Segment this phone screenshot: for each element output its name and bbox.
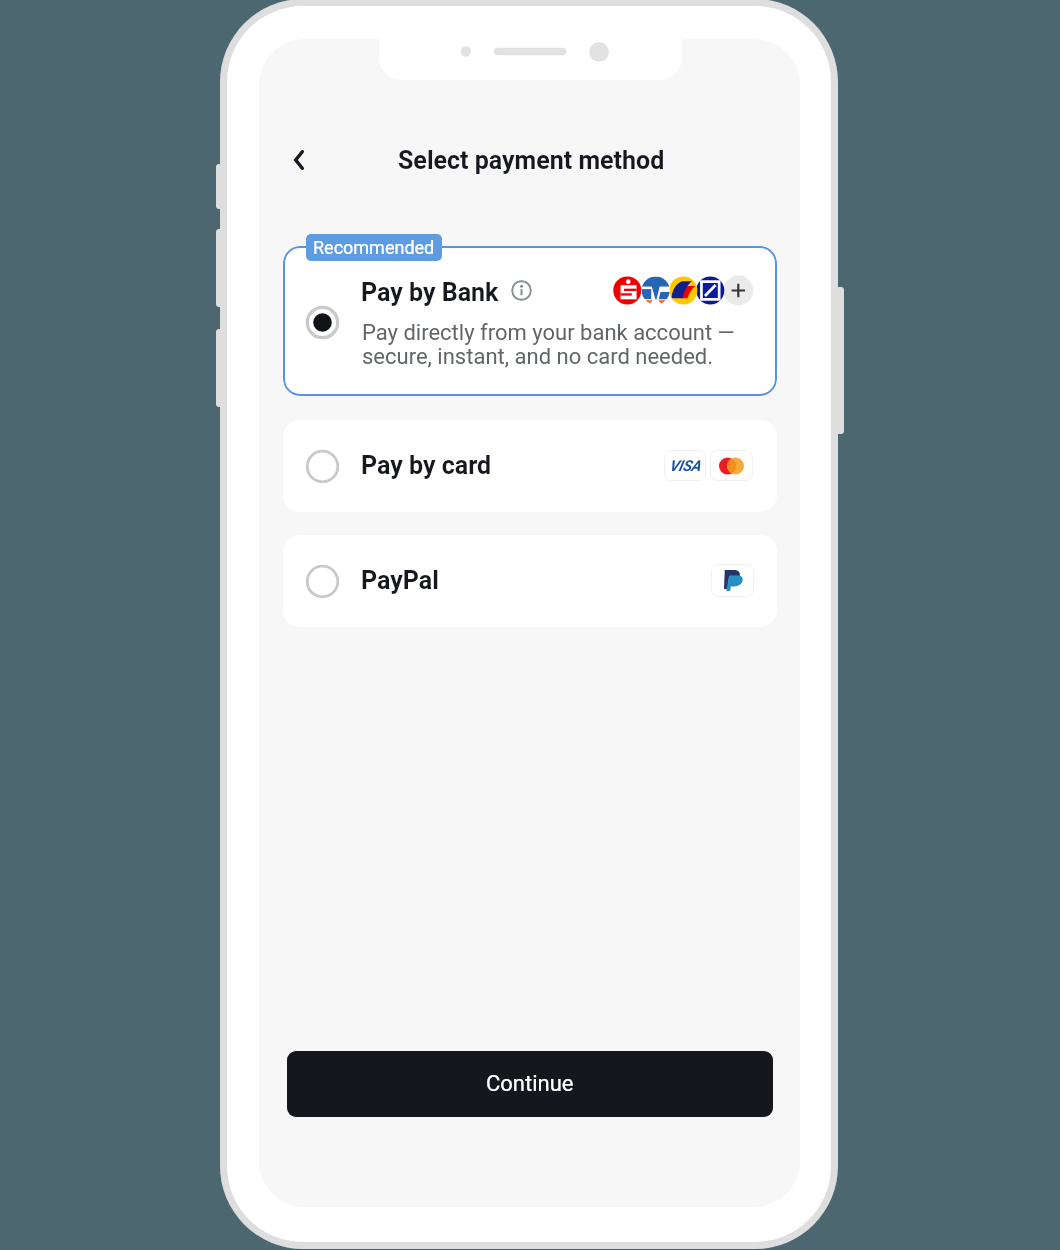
button[interactable]: Show more banks [723, 274, 755, 306]
staticText: Recommended [313, 237, 435, 258]
button[interactable]: Pay by Bank [283, 246, 777, 396]
staticText: PayPal [361, 566, 439, 595]
button[interactable]: More information about Pay by Bank [511, 280, 532, 301]
button[interactable]: Continue [287, 1051, 773, 1117]
staticText: Pay directly from your bank account — se… [362, 320, 735, 369]
button[interactable]: Back [275, 136, 323, 184]
staticText: VISA [669, 457, 701, 475]
button[interactable]: Pay by card [283, 420, 777, 512]
staticText: Continue [486, 1071, 574, 1097]
button[interactable]: PayPal [283, 535, 777, 627]
staticText: Pay by card [361, 451, 492, 480]
staticText: Select payment method [398, 146, 665, 175]
staticText: Pay by Bank [361, 278, 499, 307]
